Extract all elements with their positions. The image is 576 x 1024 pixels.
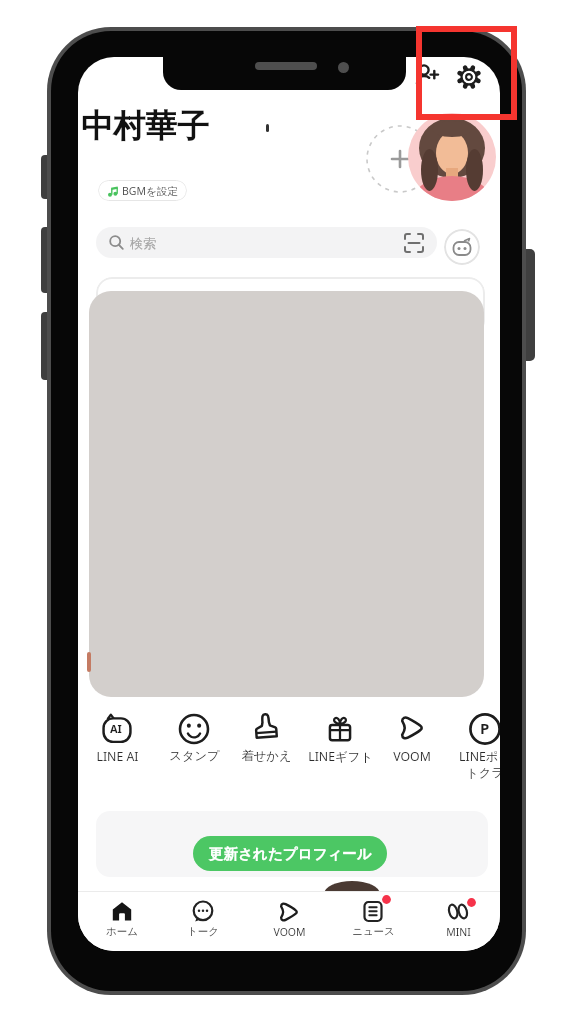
staticText: VOOM (273, 925, 306, 939)
staticText: 検索 (130, 235, 156, 251)
button[interactable] (444, 229, 480, 265)
button[interactable]: 着せかえ (229, 712, 303, 763)
staticText: LINEポイ トクラ (459, 748, 500, 781)
button[interactable]: 更新されたプロフィール (193, 836, 387, 871)
button[interactable]: LINEポイ トクラ (448, 712, 500, 781)
staticText: 更新されたプロフィール (209, 845, 372, 863)
button[interactable]: MINI (426, 899, 490, 939)
staticText: 着せかえ (241, 748, 292, 763)
button[interactable] (365, 124, 435, 194)
staticText: LINE AI (96, 748, 139, 765)
button[interactable] (413, 61, 443, 91)
staticText: LINEギフト (308, 748, 373, 765)
staticText: ホーム (106, 925, 138, 938)
staticText: ニュース (352, 925, 395, 938)
button[interactable]: 検索 (96, 227, 437, 258)
button[interactable]: BGMを設定 (98, 180, 187, 201)
staticText: 中村華子 (81, 106, 209, 146)
staticText: スタンプ (169, 748, 220, 763)
button[interactable]: LINE AI (80, 712, 154, 765)
button[interactable]: ニュース (341, 899, 405, 938)
staticText: P (480, 718, 490, 738)
button[interactable]: ホーム (90, 899, 154, 938)
button[interactable]: トーク (171, 899, 235, 938)
staticText: トーク (187, 925, 219, 938)
button[interactable]: VOOM (257, 899, 321, 939)
button[interactable] (456, 64, 482, 90)
staticText: BGMを設定 (122, 184, 178, 198)
staticText: AI (110, 721, 122, 736)
button[interactable]: VOOM (375, 712, 449, 765)
staticText: VOOM (393, 748, 431, 765)
button[interactable] (408, 113, 496, 201)
staticText: MINI (446, 925, 471, 939)
button[interactable]: LINEギフト (303, 712, 377, 765)
button[interactable]: スタンプ (157, 712, 231, 763)
